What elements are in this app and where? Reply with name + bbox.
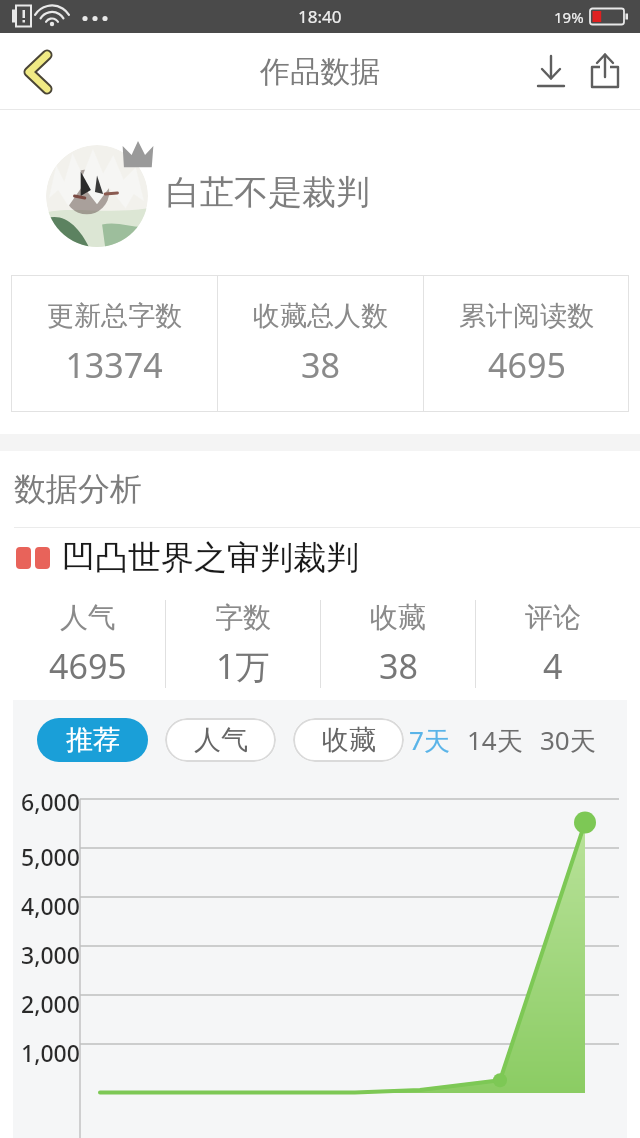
staticText: 评论 bbox=[525, 600, 581, 635]
button[interactable]: 评论 bbox=[476, 588, 630, 700]
button[interactable]: 字数 bbox=[166, 588, 320, 700]
button[interactable]: 收藏总人数 bbox=[218, 275, 423, 412]
button[interactable]: 人气 bbox=[165, 718, 276, 762]
staticText: 累计阅读数 bbox=[459, 299, 594, 333]
button[interactable]: 14天 bbox=[464, 722, 526, 758]
button[interactable]: 收藏 bbox=[293, 718, 404, 762]
staticText: 收藏总人数 bbox=[253, 299, 388, 333]
staticText: 5,000 bbox=[21, 841, 80, 872]
staticText: 作品数据 bbox=[260, 53, 380, 91]
staticText: 6,000 bbox=[21, 786, 80, 817]
button[interactable]: Back bbox=[8, 44, 64, 100]
button[interactable]: 收藏 bbox=[321, 588, 475, 700]
staticText: 4695 bbox=[488, 342, 566, 388]
staticText: 收藏 bbox=[322, 723, 376, 757]
staticText: 人气 bbox=[194, 723, 248, 757]
staticText: 4 bbox=[543, 643, 563, 689]
staticText: 收藏 bbox=[370, 600, 426, 635]
button[interactable]: Download bbox=[526, 47, 576, 97]
staticText: 4,000 bbox=[21, 890, 80, 921]
staticText: 2,000 bbox=[21, 988, 80, 1019]
button[interactable]: 更新总字数 bbox=[11, 275, 217, 412]
button[interactable]: 推荐 bbox=[37, 718, 148, 762]
staticText: 4695 bbox=[49, 643, 127, 689]
button[interactable]: 白芷不是裁判 bbox=[0, 110, 640, 275]
staticText: 1万 bbox=[216, 643, 270, 689]
staticText: 白芷不是裁判 bbox=[166, 171, 370, 214]
staticText: 18:40 bbox=[298, 5, 342, 28]
staticText: 数据分析 bbox=[14, 469, 142, 509]
button[interactable]: 凹凸世界之审判裁判 bbox=[0, 528, 640, 588]
staticText: 13374 bbox=[65, 342, 163, 388]
button[interactable]: 累计阅读数 bbox=[424, 275, 629, 412]
button[interactable]: 人气 bbox=[10, 588, 165, 700]
staticText: 字数 bbox=[215, 600, 271, 635]
staticText: 14天 bbox=[467, 722, 523, 758]
staticText: 30天 bbox=[540, 722, 596, 758]
staticText: 人气 bbox=[60, 600, 116, 635]
button[interactable]: Share bbox=[580, 47, 630, 97]
staticText: 1,000 bbox=[21, 1037, 80, 1068]
button[interactable]: 7天 bbox=[406, 722, 453, 758]
staticText: 38 bbox=[379, 643, 418, 689]
staticText: 推荐 bbox=[66, 723, 120, 757]
staticText: 19% bbox=[554, 7, 584, 27]
staticText: 凹凸世界之审判裁判 bbox=[62, 537, 359, 579]
staticText: 更新总字数 bbox=[47, 299, 182, 333]
staticText: 7天 bbox=[409, 722, 450, 758]
staticText: 3,000 bbox=[21, 939, 80, 970]
staticText: 38 bbox=[301, 342, 340, 388]
button[interactable]: 30天 bbox=[537, 722, 599, 758]
